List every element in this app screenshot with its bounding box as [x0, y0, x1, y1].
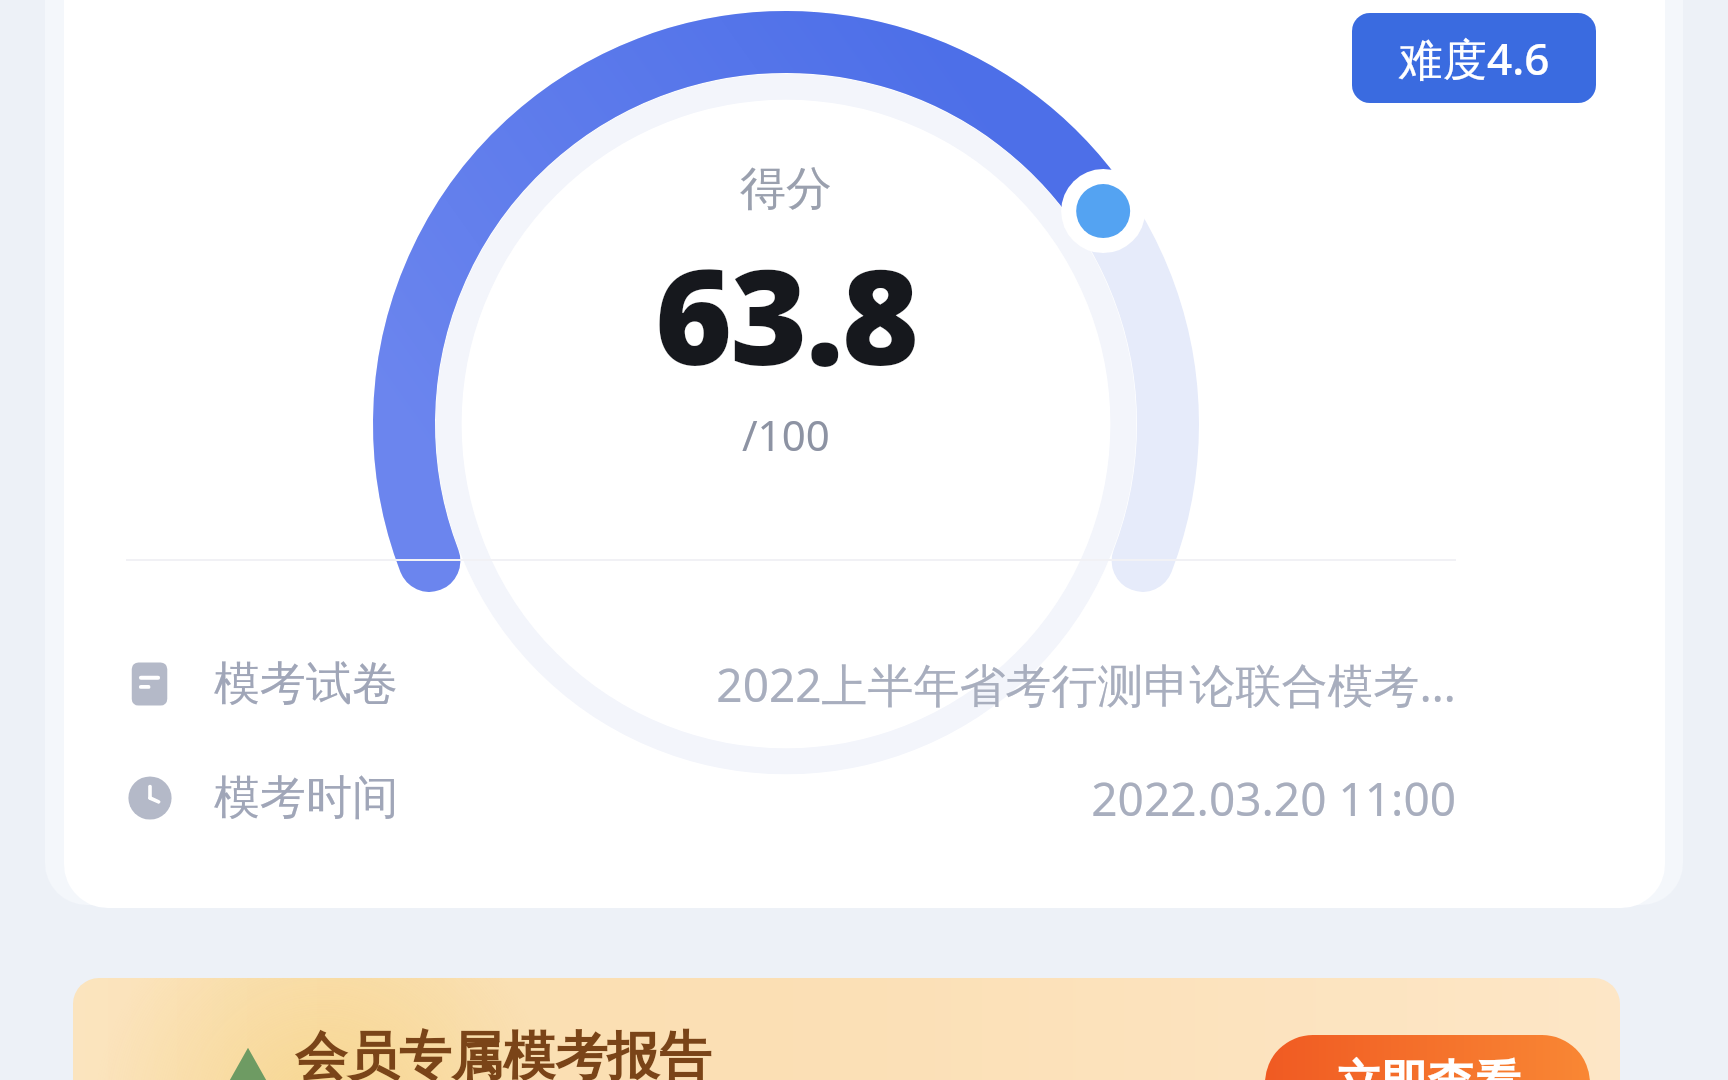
staticText: 模考试卷 — [214, 655, 398, 713]
staticText: 模考时间 — [214, 769, 398, 827]
button[interactable]: Paper — [126, 648, 1456, 720]
staticText: 立即查看 — [1336, 1054, 1520, 1080]
staticText: 会员专属模考报告 — [295, 1024, 711, 1080]
other: Paper — [126, 660, 174, 708]
staticText: /100 — [742, 406, 830, 463]
button[interactable]: 难度4.6 — [1352, 13, 1596, 103]
staticText: 63.8 — [655, 224, 918, 404]
staticText: 2022上半年省考行测申论联合模考… — [716, 653, 1456, 716]
other: Time — [126, 774, 174, 822]
button[interactable]: 立即查看 — [1265, 1035, 1590, 1080]
button[interactable]: 会员专属模考报告 — [73, 978, 1620, 1080]
staticText: 2022.03.20 11:00 — [1091, 767, 1456, 830]
staticText: 得分 — [740, 160, 832, 218]
button[interactable]: Time — [126, 762, 1456, 834]
staticText: 难度4.6 — [1399, 28, 1550, 88]
